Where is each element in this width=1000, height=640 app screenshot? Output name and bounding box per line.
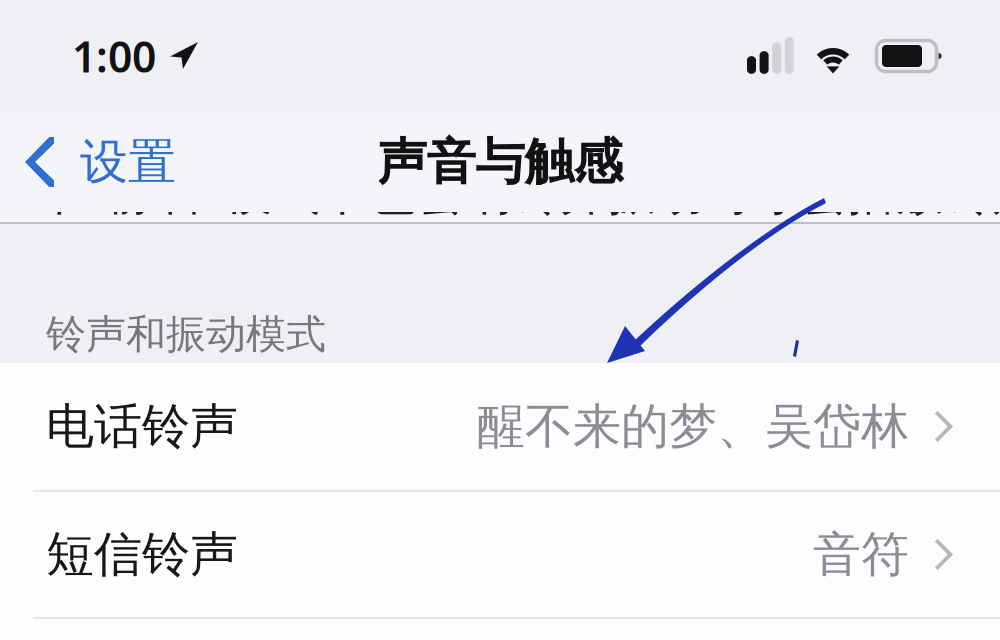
button[interactable]: 电话铃声	[0, 363, 1000, 490]
staticText: 在“静音”模式下也会响铃并振动时才会播放铃声	[46, 159, 1000, 223]
staticText: 电话铃声	[46, 397, 238, 456]
staticText: 铃声和振动模式	[46, 310, 326, 359]
staticText: 1:00	[72, 28, 156, 84]
staticText: 醒不来的梦、吴岱林	[477, 397, 909, 456]
staticText: 设置	[80, 132, 176, 191]
button[interactable]: 设置	[0, 112, 188, 212]
button[interactable]: 短信铃声	[0, 492, 1000, 617]
staticText: 音符	[813, 525, 909, 584]
staticText: 短信铃声	[46, 525, 238, 584]
staticText: 声音与触感	[377, 132, 622, 192]
